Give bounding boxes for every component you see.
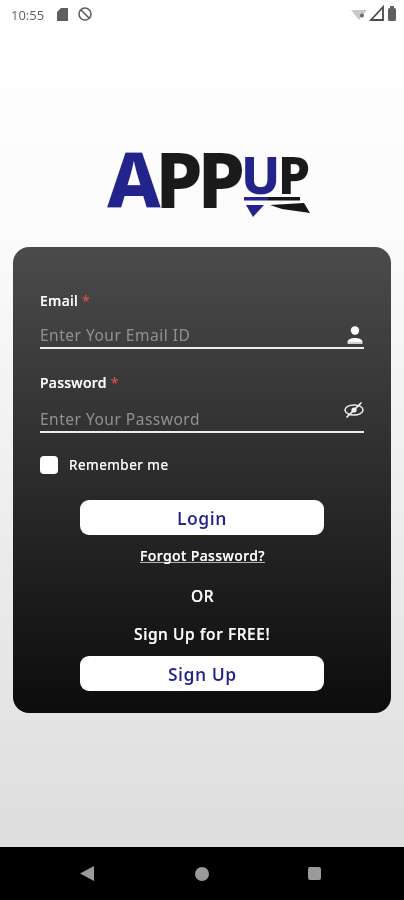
button[interactable] [195,867,209,881]
button[interactable]: Remember me [40,456,169,474]
staticText: Sign Up [168,662,237,686]
staticText: Login [177,506,227,530]
staticText: APP [107,127,240,231]
button[interactable] [344,401,364,419]
staticText: 10:55 [11,6,45,24]
staticText: Remember me [69,456,169,474]
button[interactable]: Login [80,500,324,535]
button[interactable] [308,867,321,880]
staticText: UP [241,138,308,209]
staticText: Email * [40,291,91,310]
button[interactable] [80,866,94,881]
staticText: Enter Your Email ID [40,324,346,345]
button[interactable]: Sign Up [80,656,324,691]
staticText: OR [191,585,214,606]
staticText: Enter Your Password [40,408,344,429]
staticText: Forgot Password? [140,546,265,565]
staticText: Sign Up for FREE! [134,623,271,644]
staticText: Password * [40,373,119,392]
button[interactable]: Forgot Password? [140,546,265,565]
